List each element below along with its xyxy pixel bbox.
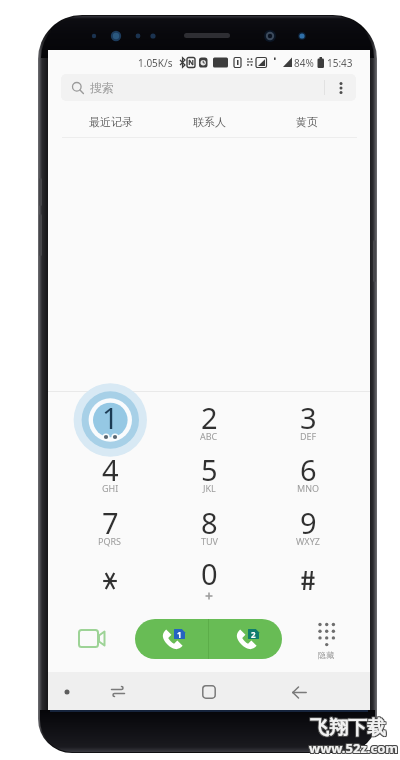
button[interactable]: 联系人 [160, 108, 258, 135]
staticText: TUV [201, 535, 218, 547]
staticText: 0 [201, 554, 218, 593]
button[interactable]: Back [285, 678, 313, 706]
button[interactable]: 3 [273, 396, 343, 446]
staticText: 飞翔下载 [311, 716, 387, 740]
staticText: www.52z.com [309, 739, 398, 757]
button[interactable]: 黄页 [258, 108, 356, 135]
staticText: 联系人 [193, 115, 226, 129]
button[interactable]: Hide dialpad [300, 616, 350, 662]
staticText: 5 [201, 450, 218, 489]
staticText: www.52z.com [310, 738, 399, 756]
button[interactable]: 4 [75, 448, 145, 498]
staticText: www.52z.com [310, 740, 399, 758]
staticText: 飞翔下载 [309, 717, 385, 741]
staticText: www.52z.com [310, 739, 399, 757]
staticText: 飞翔下载 [310, 717, 386, 741]
button[interactable]: 0 [174, 552, 244, 602]
staticText: 3 [300, 398, 317, 437]
staticText: 2 [201, 398, 218, 437]
button[interactable]: 2 [174, 396, 244, 446]
staticText: 9 [300, 503, 317, 542]
staticText: 8 [201, 503, 218, 542]
button[interactable]: Recent apps [104, 678, 132, 706]
staticText: www.52z.com [308, 740, 397, 758]
button[interactable]: 1 [75, 396, 145, 446]
button[interactable]: Call with SIM 2 [209, 619, 282, 659]
staticText: 1 [177, 629, 182, 639]
staticText: www.52z.com [308, 738, 397, 756]
button[interactable]: Home [195, 678, 223, 706]
staticText: 最近记录 [89, 115, 133, 129]
staticText: PQRS [98, 535, 122, 547]
button[interactable]: Video call [65, 613, 119, 665]
staticText: ABC [200, 430, 218, 442]
button[interactable]: 最近记录 [61, 108, 160, 135]
staticText: 飞翔下载 [311, 715, 387, 739]
button[interactable]: 8 [174, 501, 244, 551]
staticText: 飞翔下载 [309, 716, 385, 740]
staticText: 15:43 [327, 56, 353, 70]
staticText: 7 [102, 503, 119, 542]
button[interactable]: 搜索 [61, 74, 356, 101]
button[interactable]: Call with SIM 1 [135, 619, 208, 659]
staticText: www.52z.com [308, 739, 397, 757]
staticText: 1 [102, 398, 119, 437]
button[interactable] [273, 552, 343, 602]
staticText: 6 [300, 450, 317, 489]
staticText: 飞翔下载 [309, 715, 385, 739]
staticText: 隐藏 [318, 650, 334, 660]
staticText: 2 [251, 629, 256, 639]
staticText: MNO [297, 482, 320, 494]
staticText: DEF [300, 430, 317, 442]
staticText: 飞翔下载 [311, 717, 387, 741]
button[interactable]: 6 [273, 448, 343, 498]
staticText: GHI [102, 482, 119, 494]
staticText: 飞翔下载 [310, 715, 386, 739]
staticText: www.52z.com [309, 740, 398, 758]
staticText: 1.05K/s [138, 56, 173, 70]
button[interactable] [75, 552, 145, 602]
staticText: 黄页 [296, 115, 318, 129]
button[interactable]: 5 [174, 448, 244, 498]
staticText: 4 [102, 450, 119, 489]
staticText: www.52z.com [309, 738, 398, 756]
staticText: 飞翔下载 [310, 716, 386, 740]
staticText: WXYZ [296, 535, 320, 547]
staticText: 84% [294, 56, 314, 70]
staticText: 搜索 [90, 80, 114, 95]
button[interactable]: 7 [75, 501, 145, 551]
button[interactable]: Menu [53, 678, 81, 706]
button[interactable]: 9 [273, 501, 343, 551]
button[interactable]: More options [325, 74, 356, 101]
staticText: JKL [203, 482, 216, 494]
